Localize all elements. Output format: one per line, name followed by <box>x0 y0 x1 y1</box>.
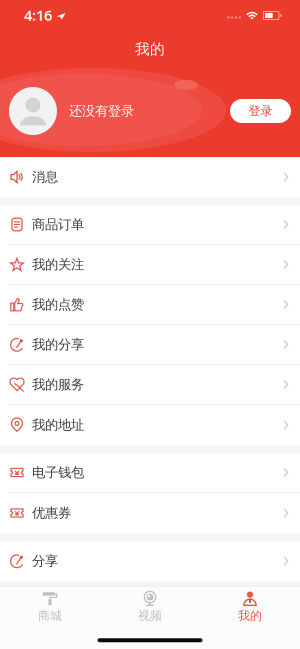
button[interactable]: 我的分享 <box>0 325 300 365</box>
button[interactable]: 我的服务 <box>0 365 300 405</box>
button[interactable]: 登录 <box>230 99 291 123</box>
button[interactable]: 电子钱包 <box>0 453 300 493</box>
staticText: 还没有登录 <box>69 103 134 119</box>
staticText: 我的分享 <box>32 336 84 353</box>
staticText: 视频 <box>138 608 162 623</box>
staticText: 我的服务 <box>32 376 84 393</box>
button[interactable]: 分享 <box>0 541 300 581</box>
staticText: 我的 <box>135 40 165 58</box>
staticText: 我的关注 <box>32 256 84 273</box>
button[interactable]: 优惠券 <box>0 493 300 533</box>
staticText: 优惠券 <box>32 505 71 521</box>
button[interactable]: 消息 <box>0 157 300 197</box>
button[interactable]: 视频 <box>100 586 200 630</box>
button[interactable]: 商品订单 <box>0 205 300 245</box>
button[interactable]: 我的地址 <box>0 405 300 445</box>
staticText: 我的 <box>238 608 262 623</box>
button[interactable]: 商城 <box>0 586 100 630</box>
staticText: 我的点赞 <box>32 296 84 313</box>
button[interactable]: 我的点赞 <box>0 285 300 325</box>
staticText: 商品订单 <box>32 216 84 233</box>
staticText: 商城 <box>38 608 62 623</box>
staticText: 电子钱包 <box>32 464 84 481</box>
staticText: 登录 <box>248 104 272 118</box>
button[interactable]: 我的 <box>200 586 300 630</box>
button[interactable]: 我的关注 <box>0 245 300 285</box>
staticText: 我的地址 <box>32 417 84 433</box>
staticText: 分享 <box>32 553 58 569</box>
staticText: 4:16 <box>24 5 52 25</box>
staticText: 消息 <box>32 169 58 185</box>
